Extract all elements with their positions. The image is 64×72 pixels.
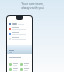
staticText: Your care team, — [21, 2, 44, 6]
button[interactable]: App logo — [8, 22, 32, 26]
button[interactable] — [7, 31, 32, 36]
button[interactable] — [20, 67, 30, 72]
button[interactable] — [7, 45, 32, 54]
staticText: always with you — [21, 6, 44, 10]
button[interactable] — [9, 67, 19, 72]
button[interactable] — [7, 26, 32, 31]
button[interactable] — [7, 36, 32, 41]
button[interactable] — [20, 62, 30, 67]
button[interactable] — [9, 62, 19, 67]
